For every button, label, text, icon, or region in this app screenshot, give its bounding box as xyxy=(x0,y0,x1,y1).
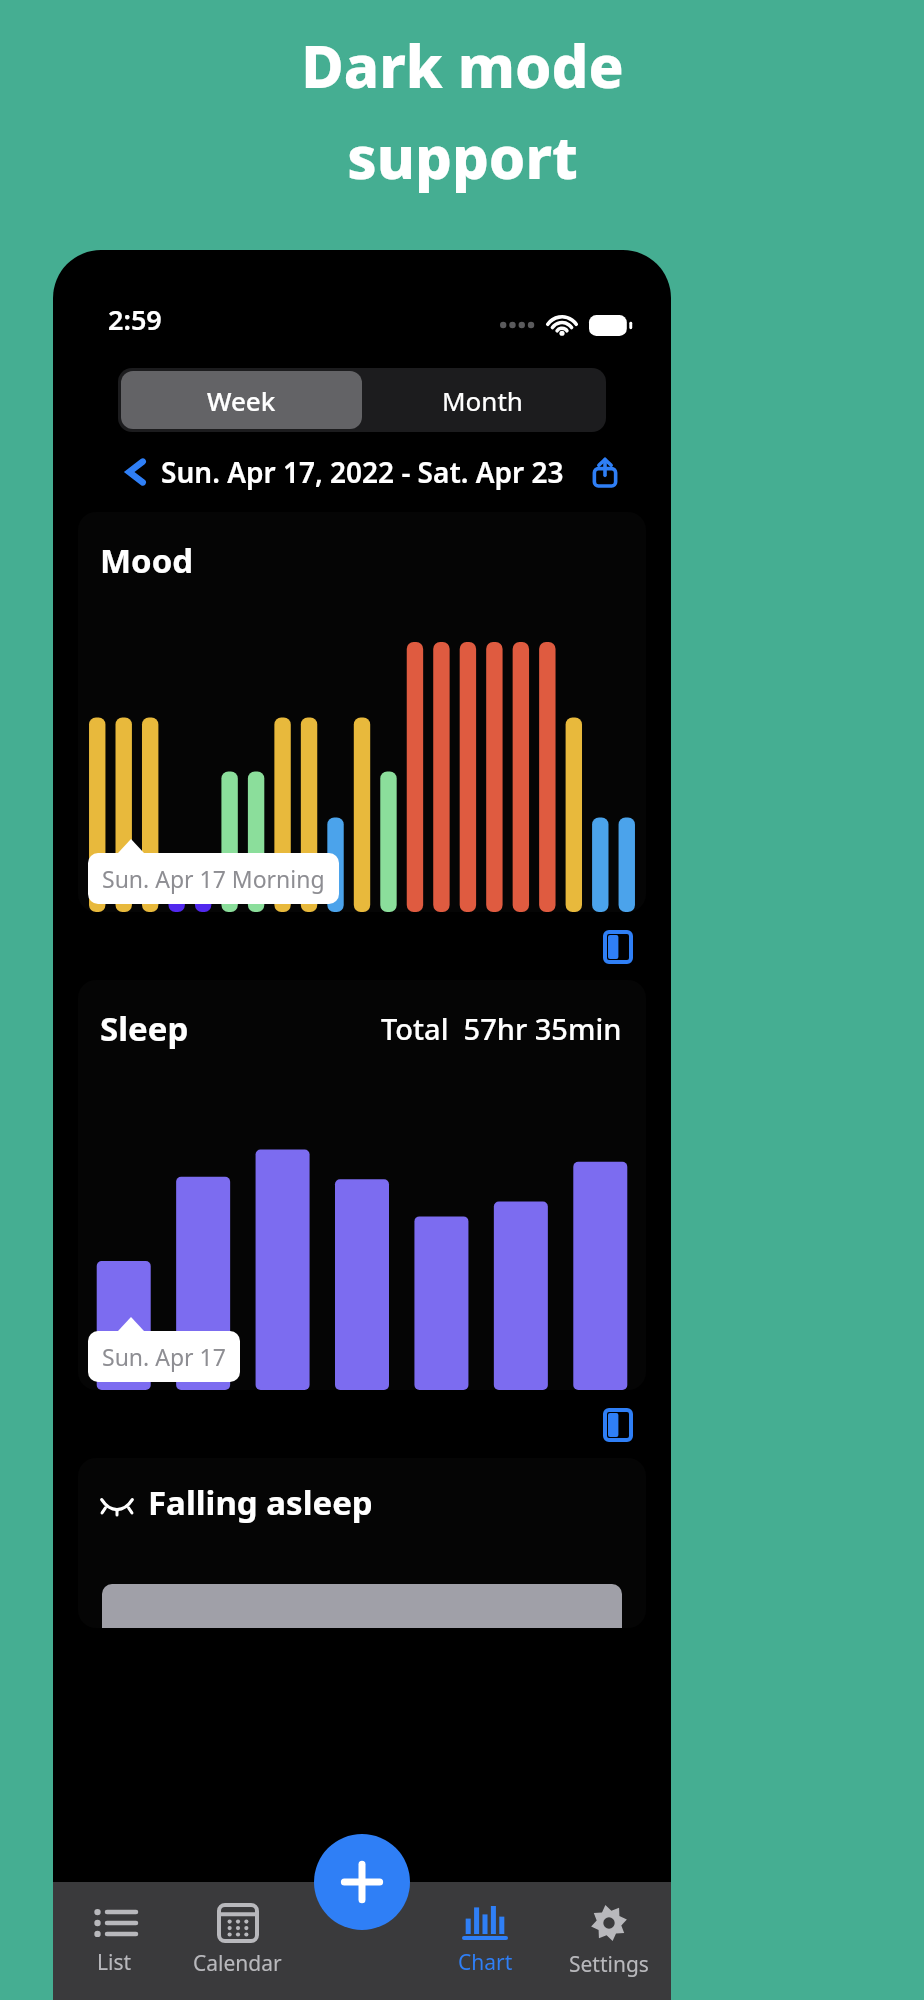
button[interactable]: Month xyxy=(362,371,603,429)
staticText: Dark mode xyxy=(301,26,624,105)
staticText: Settings xyxy=(569,1950,649,1979)
button[interactable]: Calendar xyxy=(176,1882,299,2000)
staticText: Chart xyxy=(458,1948,513,1977)
staticText: 2:59 xyxy=(108,301,162,338)
staticText: Sun. Apr 17, 2022 - Sat. Apr 23 xyxy=(161,453,564,491)
button[interactable]: Add entry xyxy=(314,1834,410,1930)
staticText: support xyxy=(347,117,578,196)
staticText: Total 57hr 35min xyxy=(381,1009,622,1048)
button[interactable]: Settings xyxy=(547,1882,671,2000)
staticText: Sleep xyxy=(100,1006,189,1051)
button[interactable]: Sleep xyxy=(78,980,646,1390)
staticText: List xyxy=(97,1948,132,1977)
staticText: Calendar xyxy=(193,1949,282,1978)
staticText: Week xyxy=(207,383,276,418)
staticText: Sun. Apr 17 xyxy=(102,1341,226,1372)
button[interactable]: Share xyxy=(583,450,627,494)
button[interactable]: Chart xyxy=(423,1882,547,2000)
button[interactable]: Falling asleep xyxy=(78,1458,646,1628)
staticText: Sun. Apr 17 Morning xyxy=(102,863,325,894)
button[interactable]: Previous week xyxy=(115,450,159,494)
button[interactable]: List xyxy=(53,1882,176,2000)
button[interactable]: Mood xyxy=(78,512,646,912)
button[interactable]: Week xyxy=(121,371,362,429)
staticText: Month xyxy=(442,383,523,418)
staticText: Falling asleep xyxy=(148,1480,373,1525)
staticText: Mood xyxy=(100,538,194,583)
